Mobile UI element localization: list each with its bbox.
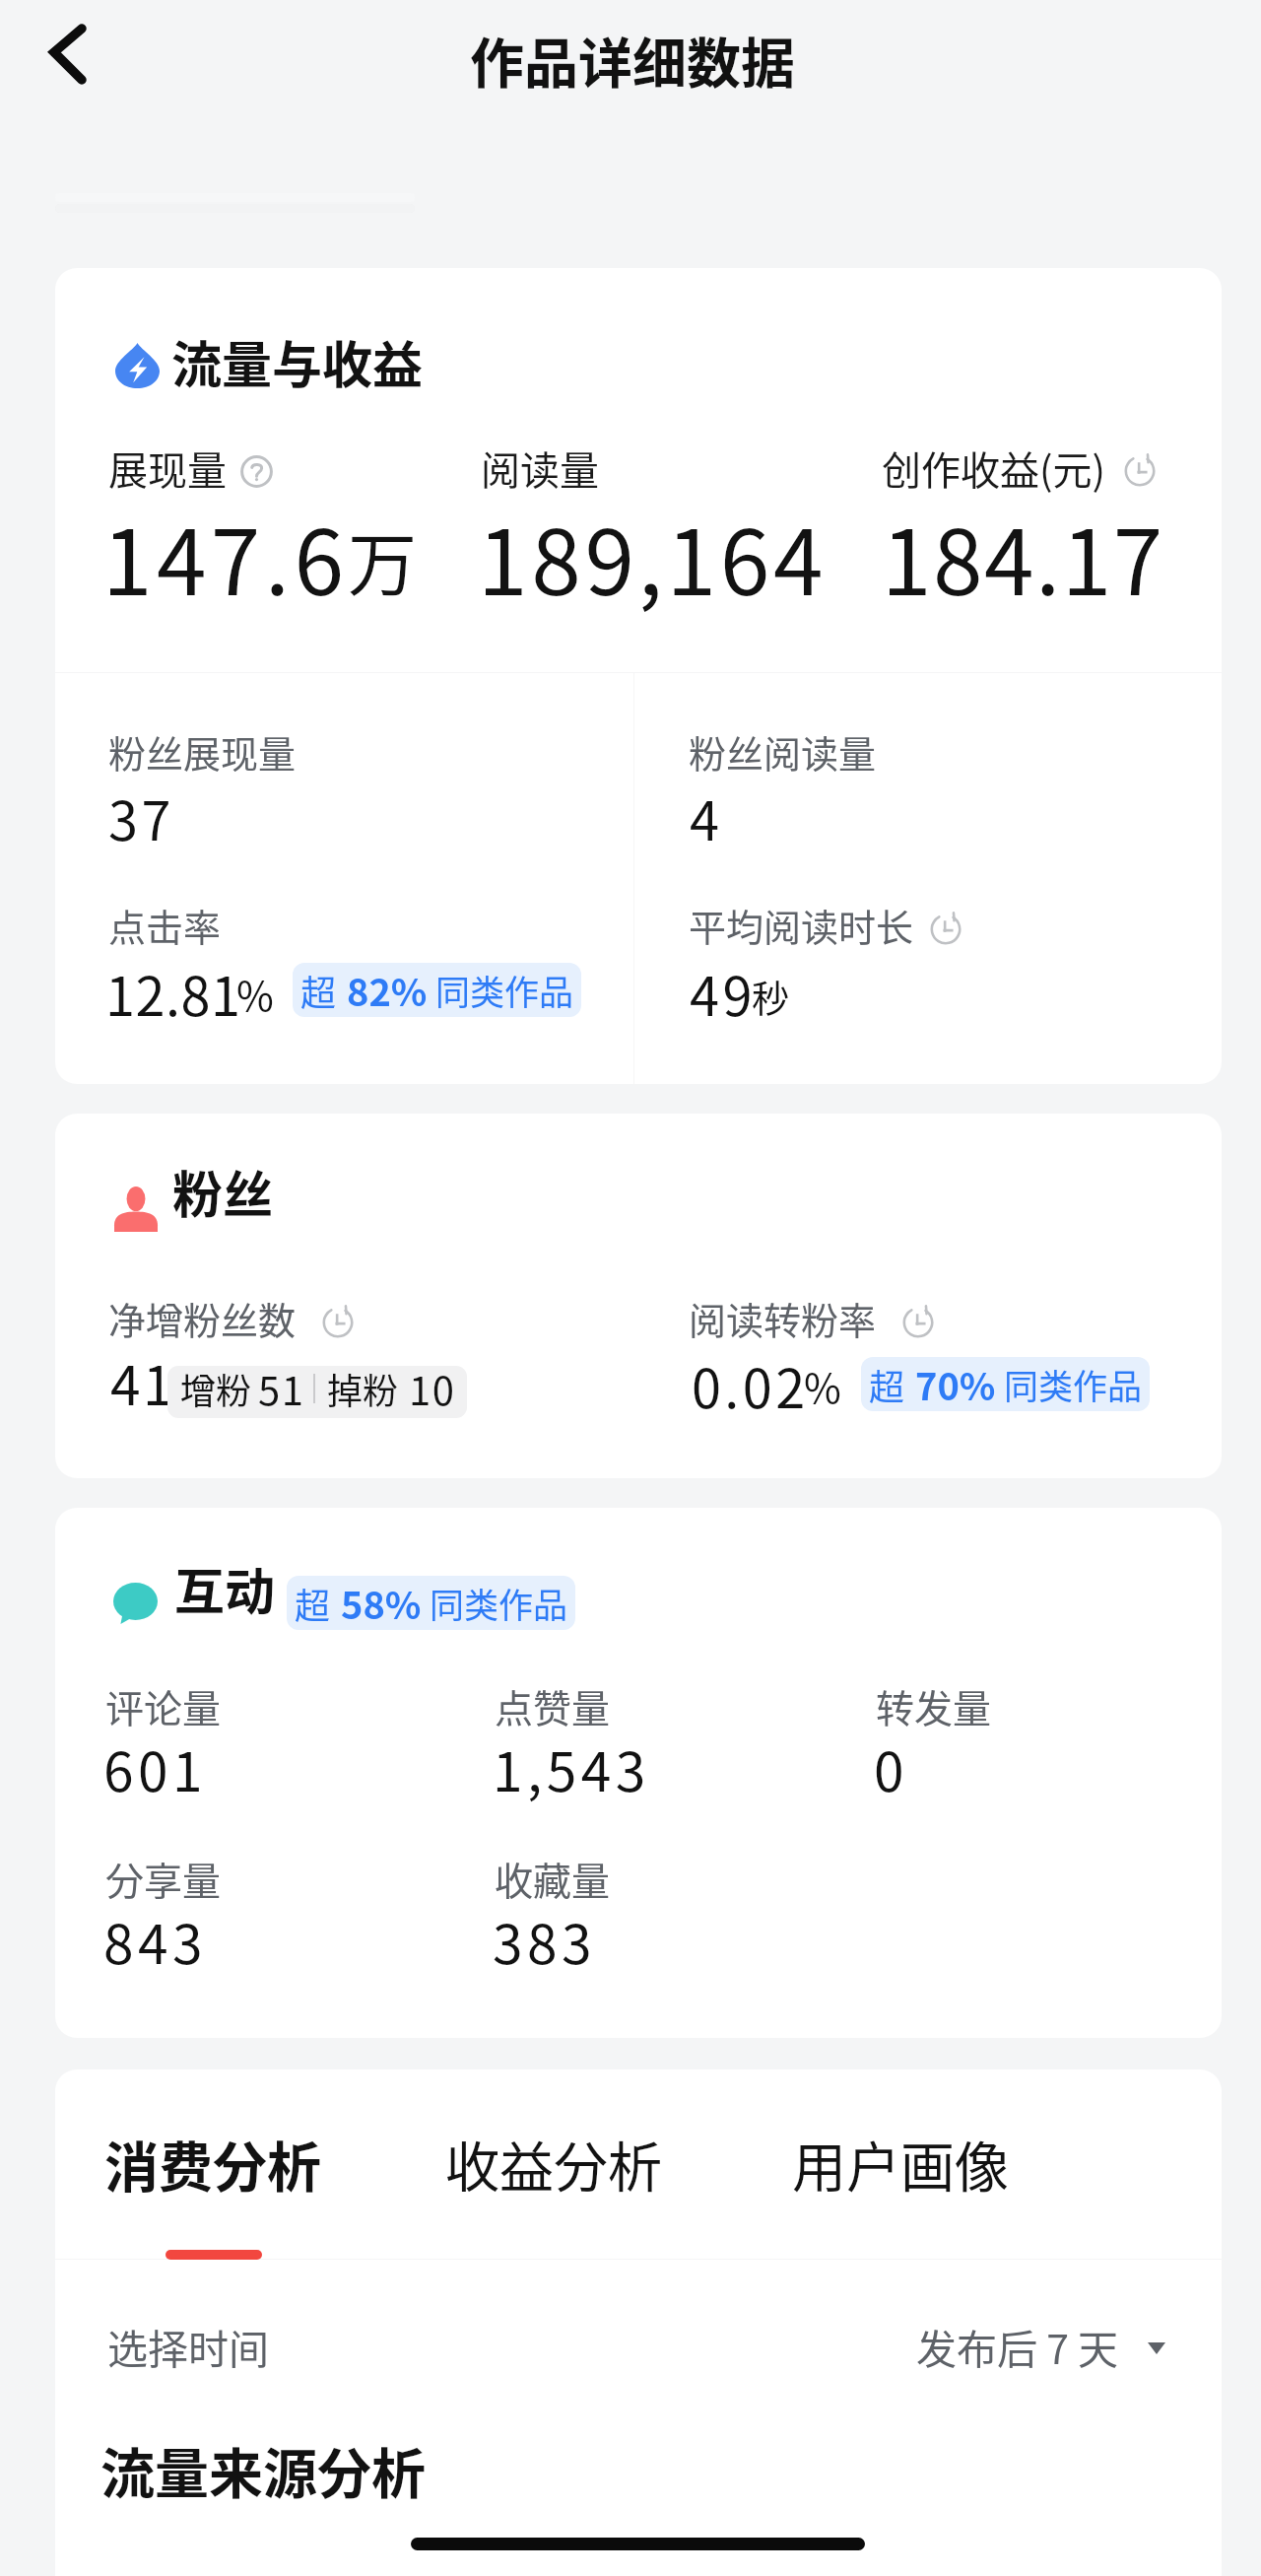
staticText: 流量来源分析	[100, 2430, 427, 2509]
button[interactable]	[884, 434, 1209, 621]
button[interactable]: 超	[861, 1357, 1150, 1411]
staticText: 流量与收益	[171, 325, 424, 398]
button[interactable]: 超	[287, 1576, 575, 1630]
staticText: 843	[103, 1901, 208, 1980]
staticText: 超	[869, 1359, 905, 1410]
staticText: 发布后 7 天	[916, 2317, 1119, 2375]
staticText: 用户画像	[792, 2124, 1010, 2203]
staticText: 147.6	[102, 491, 349, 621]
button[interactable]	[853, 1670, 1208, 1813]
staticText: 掉粉	[327, 1363, 399, 1414]
button[interactable]: 超	[293, 963, 581, 1017]
staticText: 同类作品	[435, 965, 574, 1015]
staticText: 58%	[341, 1576, 422, 1630]
staticText: 评论量	[105, 1678, 222, 1733]
staticText: 12.81	[105, 954, 241, 1031]
staticText: 4	[690, 779, 719, 855]
staticText: 阅读量	[481, 440, 599, 497]
staticText: 作品详细数据	[470, 20, 796, 99]
staticText: 0.02	[692, 1346, 809, 1423]
staticText: 点赞量	[495, 1678, 611, 1733]
button[interactable]: Data updates periodically	[322, 1307, 354, 1338]
staticText: 阅读转粉率	[689, 1291, 877, 1345]
button[interactable]	[83, 1670, 457, 1813]
staticText: %	[236, 964, 274, 1022]
button[interactable]: Data updates periodically	[1124, 455, 1156, 487]
staticText: 超	[300, 965, 337, 1016]
staticText: 粉丝	[172, 1155, 274, 1228]
staticText: 转发量	[876, 1678, 992, 1733]
button[interactable]: Back	[14, 8, 122, 97]
staticText: 同类作品	[430, 1578, 568, 1628]
button[interactable]	[471, 1843, 845, 1986]
staticText: 1,543	[493, 1729, 650, 1807]
button[interactable]: Data updates periodically	[902, 1307, 934, 1338]
staticText: 49	[690, 954, 756, 1031]
staticText: 189,164	[478, 491, 828, 621]
staticText: 万	[348, 510, 417, 610]
button[interactable]	[110, 434, 471, 621]
button[interactable]	[83, 887, 634, 1050]
staticText: 41	[110, 1342, 176, 1421]
staticText: 平均阅读时长	[689, 898, 914, 952]
staticText: 383	[493, 1901, 597, 1980]
button[interactable]	[662, 1281, 1214, 1439]
staticText: 粉丝展现量	[108, 724, 297, 779]
button[interactable]	[662, 887, 1214, 1050]
staticText: 184.17	[882, 491, 1164, 621]
staticText: 同类作品	[1004, 1359, 1143, 1409]
staticText: 超	[295, 1578, 331, 1629]
staticText: 消费分析	[104, 2124, 322, 2203]
staticText: 82%	[347, 963, 428, 1017]
button[interactable]: 用户画像	[774, 2109, 1019, 2247]
staticText: 601	[103, 1729, 208, 1807]
staticText: 互动	[174, 1552, 276, 1625]
staticText: 净增粉丝数	[108, 1291, 297, 1345]
staticText: 秒	[752, 969, 790, 1023]
button[interactable]	[483, 434, 877, 621]
staticText: %	[804, 1356, 841, 1414]
button[interactable]: 消费分析	[87, 2109, 331, 2247]
button[interactable]: 收益分析	[428, 2109, 672, 2247]
staticText: 增粉	[180, 1363, 252, 1414]
staticText: 51	[258, 1360, 305, 1417]
button[interactable]: What is this metric?	[240, 455, 273, 488]
button[interactable]	[83, 1843, 457, 1986]
staticText: 70%	[915, 1357, 996, 1411]
staticText: 37	[108, 779, 174, 855]
staticText: 展现量	[108, 440, 227, 497]
button[interactable]: Data updates periodically	[930, 914, 962, 945]
staticText: 点击率	[108, 898, 222, 952]
staticText: 收益分析	[445, 2124, 663, 2203]
staticText: 选择时间	[107, 2317, 269, 2375]
button[interactable]	[471, 1670, 845, 1813]
button[interactable]	[83, 1281, 634, 1439]
staticText: 粉丝阅读量	[689, 724, 877, 779]
button[interactable]	[83, 690, 634, 882]
staticText: 分享量	[105, 1851, 222, 1906]
button[interactable]	[662, 690, 1214, 882]
staticText: 创作收益(元)	[882, 440, 1106, 497]
staticText: 10	[409, 1360, 456, 1417]
staticText: 收藏量	[495, 1851, 611, 1906]
staticText: 0	[874, 1729, 904, 1807]
button[interactable]: 发布后 7 天	[916, 2317, 1119, 2375]
